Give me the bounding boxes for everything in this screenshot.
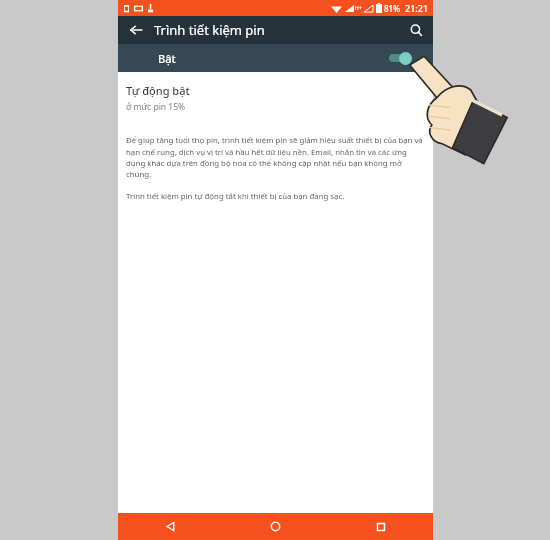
staticText: H+ [355,5,362,12]
button[interactable]: Back [118,513,223,540]
button[interactable]: Search [399,16,433,44]
staticText: Để giúp tăng tuổi thọ pin, trình tiết ki… [126,135,423,179]
button[interactable]: Home [223,513,328,540]
staticText: Tự động bật [126,83,190,98]
staticText: Trình tiết kiệm pin tự động tắt khi thiế… [126,191,345,202]
staticText: ở mức pin 15% [126,101,186,113]
staticText: Bật [158,51,176,66]
button[interactable]: Recents [328,513,433,540]
staticText: 81% [384,3,400,14]
button[interactable]: Bật [118,44,433,72]
button[interactable]: Back [118,16,154,44]
staticText: 21:21 [405,2,429,14]
button[interactable]: Tự động bật [118,82,433,117]
staticText: Trình tiết kiệm pin [154,21,265,39]
